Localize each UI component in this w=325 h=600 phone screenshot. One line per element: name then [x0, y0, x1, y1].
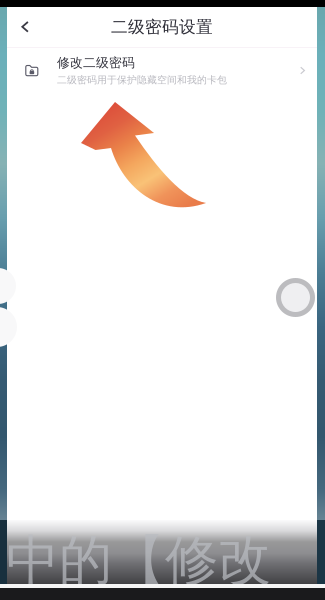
- button[interactable]: 修改二级密码: [7, 48, 317, 93]
- staticText: 二级密码用于保护隐藏空间和我的卡包: [57, 74, 227, 86]
- staticText: 二级密码设置: [111, 16, 213, 37]
- staticText: 修改二级密码: [57, 55, 135, 71]
- button[interactable]: Quick action: [276, 278, 315, 317]
- staticText: 中的【修改二: [6, 527, 271, 600]
- button[interactable]: Back: [7, 7, 43, 47]
